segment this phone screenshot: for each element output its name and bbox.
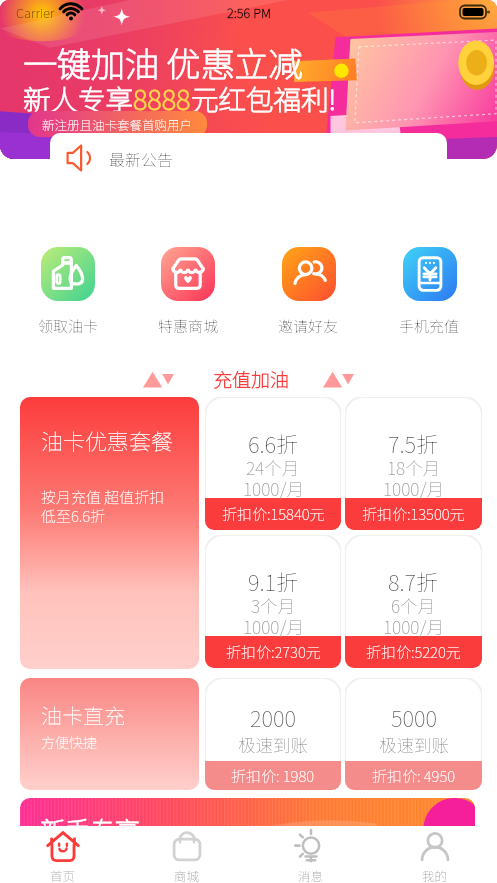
staticText: 油卡直充 (41, 700, 125, 730)
staticText: 折扣价: 1980 (231, 765, 315, 787)
button[interactable]: 首页 (0, 826, 125, 883)
staticText: 按月充值 超值折扣 (41, 486, 165, 508)
staticText: 2000 (250, 701, 296, 733)
staticText: 最新公告 (109, 147, 174, 170)
staticText: 方便快捷 (41, 732, 97, 752)
staticText: 8888 (133, 78, 191, 118)
staticText: 2:56 PM (227, 3, 271, 22)
staticText: 元红包福利! (191, 78, 337, 118)
staticText: 5000 (391, 701, 437, 733)
staticText: 首页 (50, 866, 76, 883)
button[interactable]: 领取油卡 (8, 247, 128, 337)
staticText: 折扣价:13500元 (362, 503, 465, 525)
staticText: 折扣价:5220元 (366, 641, 461, 663)
button[interactable]: 我的 (373, 826, 497, 883)
staticText: 新手专享 (40, 811, 141, 847)
staticText: 1000/月 (243, 476, 304, 501)
staticText: 6.6折 (248, 427, 299, 459)
staticText: 极速到账 (379, 732, 449, 757)
staticText: 手机充值 (399, 315, 460, 337)
button[interactable]: 折扣价: 4950 (345, 678, 482, 790)
button[interactable]: 邀请好友 (248, 247, 369, 337)
button[interactable]: 折扣价:5220元 (345, 535, 482, 668)
staticText: 低至6.6折 (41, 505, 106, 527)
button[interactable]: 特惠商城 (128, 247, 248, 337)
staticText: 油卡优惠套餐 (41, 424, 174, 456)
staticText: 9.1折 (248, 565, 299, 597)
staticText: 邀请好友 (278, 315, 339, 337)
button[interactable]: 折扣价:15840元 (205, 397, 341, 530)
staticText: 7.5折 (388, 427, 439, 459)
button[interactable]: 折扣价: 1980 (205, 678, 341, 790)
button[interactable]: 最新公告 (50, 133, 447, 183)
staticText: Carrier (16, 3, 55, 22)
staticText: 消息 (298, 866, 324, 883)
staticText: 1000/月 (383, 614, 444, 639)
staticText: 折扣价:2730元 (226, 641, 321, 663)
button[interactable]: 消息 (249, 826, 373, 883)
button[interactable]: 手机充值 (369, 247, 490, 337)
staticText: 特惠商城 (158, 315, 219, 337)
button[interactable]: 折扣价:13500元 (345, 397, 482, 530)
staticText: 商城 (174, 866, 200, 883)
staticText: 1000/月 (383, 476, 444, 501)
staticText: 领取油卡 (38, 315, 99, 337)
staticText: 折扣价: 4950 (372, 765, 456, 787)
button[interactable]: 油卡优惠套餐 (20, 397, 199, 669)
button[interactable]: 折扣价:2730元 (205, 535, 341, 668)
button[interactable]: 油卡直充 (20, 678, 199, 790)
staticText: 24个月 (246, 455, 300, 480)
staticText: 3个月 (251, 593, 296, 618)
button[interactable]: 新手专享 (20, 798, 475, 858)
staticText: 1000/月 (243, 614, 304, 639)
staticText: 一键加油 优惠立减 (23, 38, 303, 87)
button[interactable]: 商城 (125, 826, 249, 883)
staticText: 新人专享 (23, 78, 133, 118)
staticText: 我的 (422, 866, 448, 883)
staticText: 8.7折 (388, 565, 439, 597)
staticText: 折扣价:15840元 (222, 503, 325, 525)
staticText: 6个月 (391, 593, 436, 618)
staticText: 18个月 (387, 455, 441, 480)
staticText: 极速到账 (238, 732, 308, 757)
staticText: 新注册且油卡套餐首购用户 (42, 115, 193, 133)
staticText: 充值加油 (213, 365, 290, 393)
